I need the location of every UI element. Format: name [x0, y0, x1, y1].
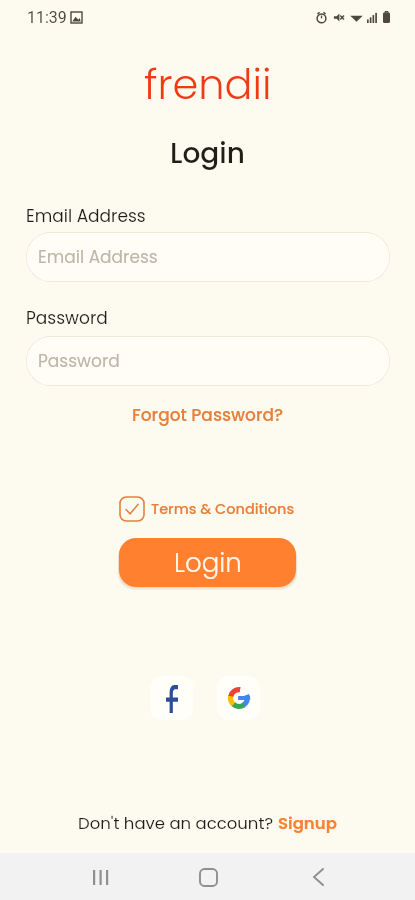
button[interactable]: Password: [26, 336, 390, 386]
staticText: Signup: [278, 812, 337, 835]
button[interactable]: Email Address: [26, 232, 390, 282]
button[interactable]: Back: [296, 855, 340, 899]
button[interactable]: Sign in with Google: [217, 676, 260, 720]
button[interactable]: Forgot Password?: [132, 403, 284, 427]
button[interactable]: Recent apps: [78, 855, 122, 899]
button[interactable]: Home: [186, 855, 230, 899]
button[interactable]: Sign in with Facebook: [150, 676, 193, 720]
staticText: frendii: [144, 55, 272, 113]
button[interactable]: Login: [119, 538, 296, 587]
staticText: Login: [170, 134, 245, 173]
button[interactable]: Terms & Conditions: [120, 497, 295, 521]
staticText: Don't have an account?: [78, 812, 278, 835]
staticText: Password: [38, 349, 120, 373]
staticText: Email Address: [38, 245, 158, 269]
staticText: Terms & Conditions: [151, 499, 295, 519]
staticText: Login: [174, 545, 242, 581]
staticText: 11:39: [27, 8, 67, 27]
staticText: Email Address: [26, 204, 146, 228]
staticText: Password: [26, 306, 108, 330]
staticText: Forgot Password?: [132, 403, 284, 427]
button[interactable]: Signup: [278, 812, 337, 835]
